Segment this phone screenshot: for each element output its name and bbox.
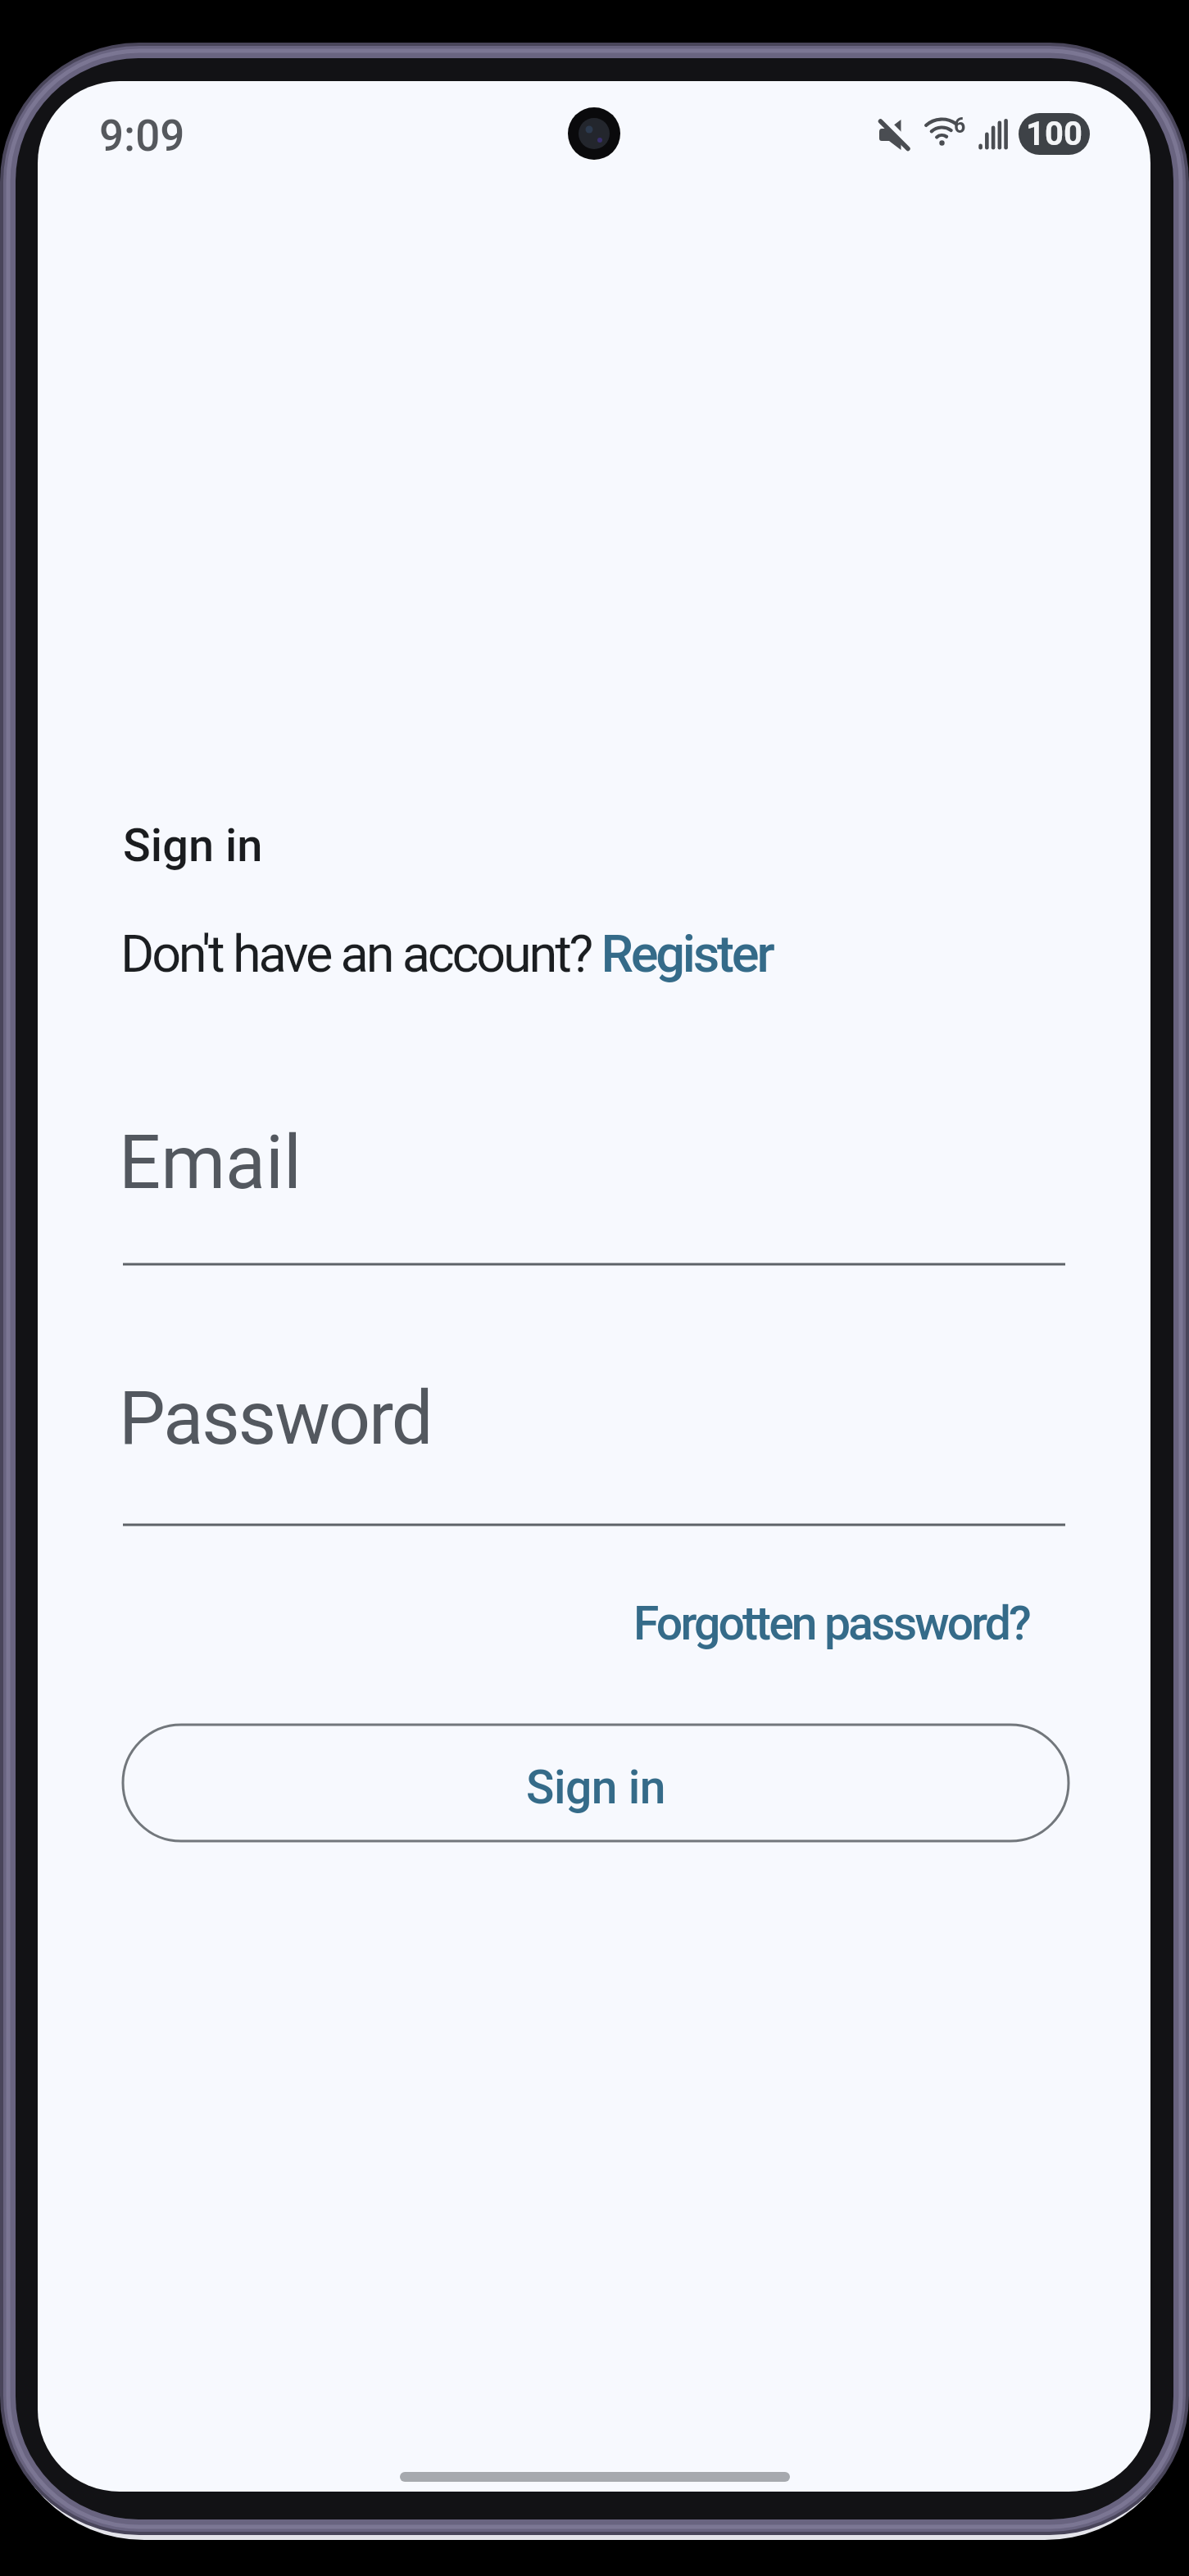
staticText: Sign in [123,819,263,873]
staticText: Sign in [526,1760,666,1815]
staticText: Forgotten password? [633,1596,1029,1651]
staticText: 100 [1026,115,1082,153]
staticText: 6 [954,114,966,138]
staticText: Password [119,1376,432,1462]
staticText: 9:09 [99,111,185,161]
staticText: Email [119,1120,302,1206]
staticText: Don't have an account? Register [120,924,773,985]
